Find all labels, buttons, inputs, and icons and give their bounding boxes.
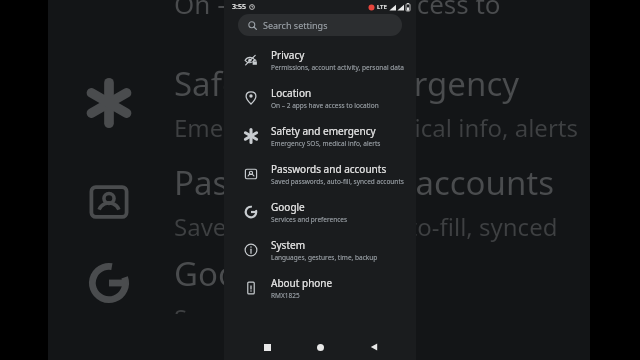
button[interactable]: Search settings <box>238 14 402 36</box>
staticText: Passwords and accounts <box>174 160 555 205</box>
staticText: Saved passwords, auto-fill, synced accou… <box>271 177 404 186</box>
staticText: Saved passwords, auto-fill, synced accou… <box>174 210 590 243</box>
button[interactable]: Passwords and accounts <box>224 155 416 193</box>
staticText: Emergency SOS, medical info, alerts <box>271 139 381 148</box>
staticText: Passwords and accounts <box>271 162 387 176</box>
staticText: Languages, gestures, time, backup <box>271 253 378 262</box>
staticText: RMX1825 <box>271 291 300 300</box>
staticText: Emergency SOS, medical info, alerts <box>174 111 578 144</box>
staticText: Services and preferences <box>174 301 455 314</box>
staticText: Safety and emergency <box>174 61 520 106</box>
staticText: Permissions, account activity, personal … <box>271 63 404 72</box>
staticText: LTE <box>377 3 387 11</box>
staticText: On – 2 apps have access to location <box>174 0 590 21</box>
button[interactable]: Recent apps <box>256 336 278 358</box>
staticText: Safety and emergency <box>271 124 376 138</box>
staticText: Services and preferences <box>271 215 348 224</box>
staticText: About phone <box>271 276 333 290</box>
staticText: Search settings <box>263 19 328 31</box>
button[interactable]: Back <box>363 336 385 358</box>
button[interactable]: Home <box>309 336 331 358</box>
button[interactable]: Google <box>224 193 416 231</box>
button[interactable]: System <box>224 231 416 269</box>
staticText: 3:55 <box>232 2 246 12</box>
staticText: Privacy <box>271 48 305 62</box>
staticText: System <box>271 238 305 252</box>
staticText: On – 2 apps have access to location <box>271 101 379 110</box>
button[interactable]: Privacy <box>224 41 416 79</box>
button[interactable]: Safety and emergency <box>224 117 416 155</box>
staticText: Location <box>271 86 312 100</box>
button[interactable]: About phone <box>224 269 416 307</box>
button[interactable]: Location <box>224 79 416 117</box>
staticText: Google <box>174 251 286 296</box>
staticText: Google <box>271 200 305 214</box>
